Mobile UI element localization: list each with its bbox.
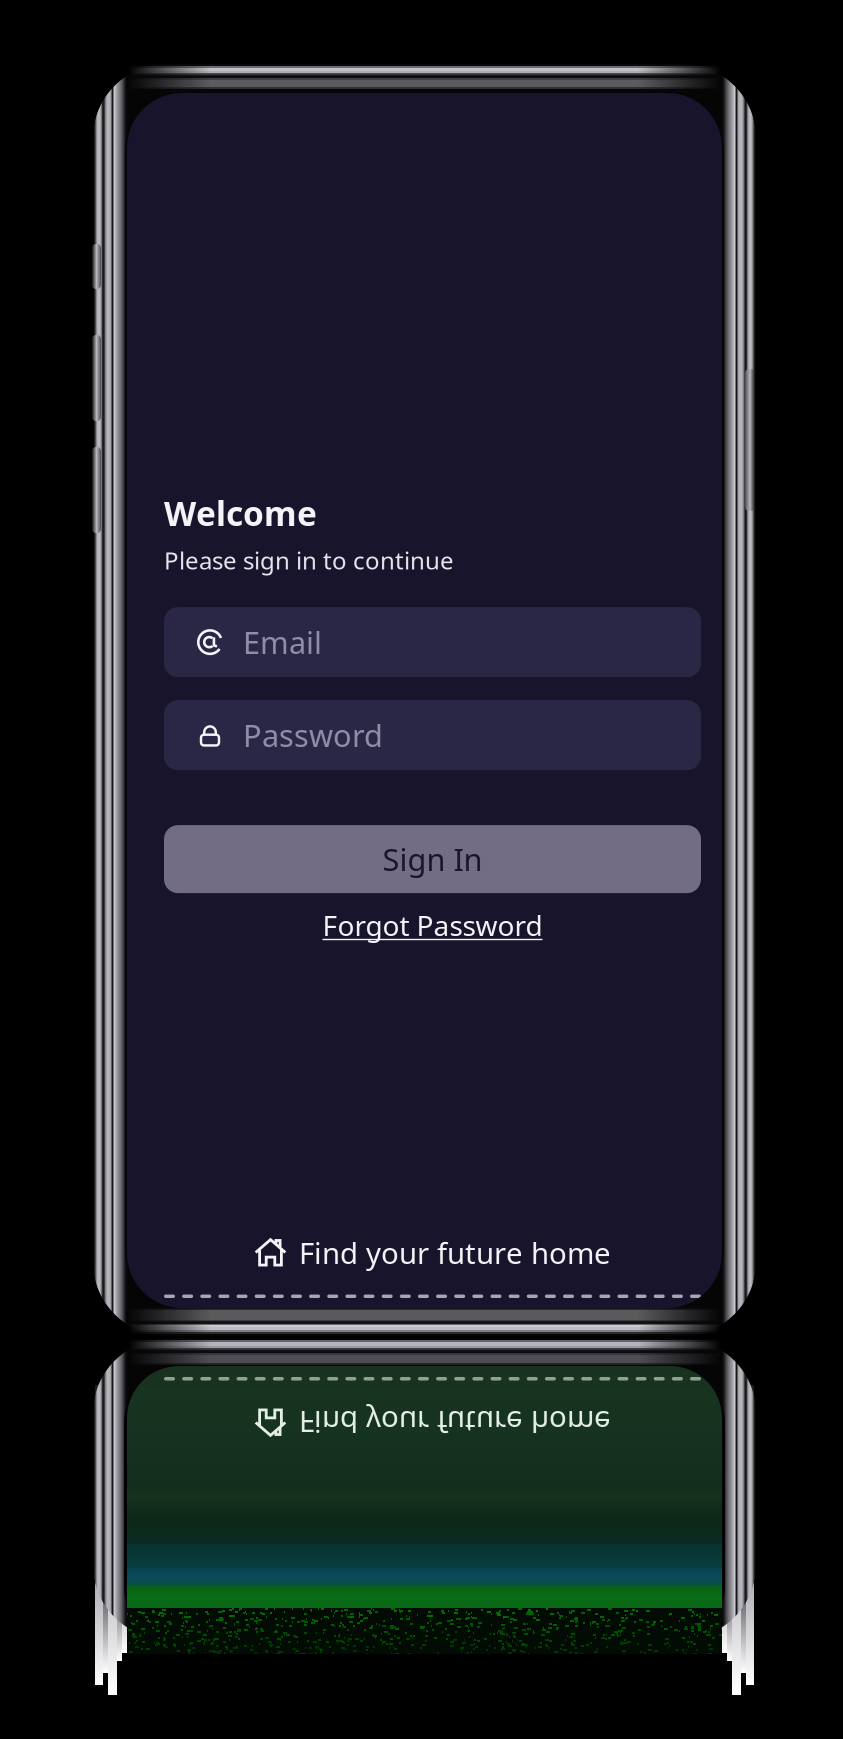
button[interactable]: Email: [164, 607, 701, 677]
staticText: Email: [243, 622, 322, 662]
staticText: Forgot Password: [322, 906, 542, 944]
staticText: Find your future home: [299, 1233, 611, 1272]
button[interactable]: Password: [164, 700, 701, 770]
staticText: Welcome: [164, 491, 317, 535]
button[interactable]: Forgot Password: [164, 905, 701, 945]
staticText: Sign In: [382, 839, 482, 879]
button[interactable]: Sign In: [164, 825, 701, 893]
staticText: Find your future home: [299, 1590, 611, 1629]
staticText: Password: [243, 715, 383, 755]
staticText: Please sign in to continue: [164, 544, 454, 576]
